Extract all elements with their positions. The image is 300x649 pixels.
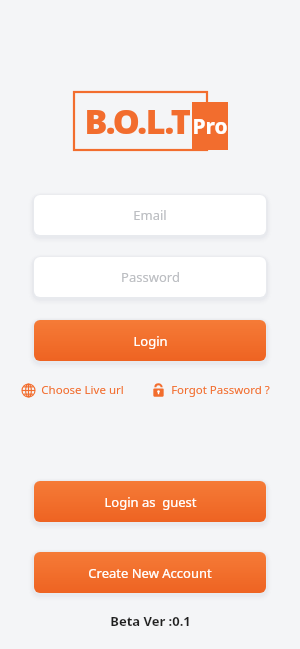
button[interactable]: Create New Account <box>32 550 268 595</box>
button[interactable]: Email <box>32 193 268 237</box>
staticText: Choose Live url <box>41 382 124 398</box>
button[interactable]: Login as guest <box>32 479 268 524</box>
staticText: Forgot Password ? <box>171 382 270 398</box>
staticText: Login <box>133 332 168 350</box>
button[interactable]: Choose Live url <box>21 382 124 398</box>
staticText: Email <box>133 206 167 224</box>
staticText: Beta Ver :0.1 <box>110 612 191 630</box>
staticText: Pro <box>192 112 228 141</box>
staticText: Login as guest <box>104 493 197 511</box>
button[interactable]: Forgot Password <box>151 382 270 398</box>
staticText: Password <box>121 268 180 286</box>
button[interactable]: Password <box>32 255 268 299</box>
staticText: B.O.L.T <box>84 98 190 144</box>
staticText: Create New Account <box>88 564 212 582</box>
button[interactable]: Login <box>32 318 268 363</box>
